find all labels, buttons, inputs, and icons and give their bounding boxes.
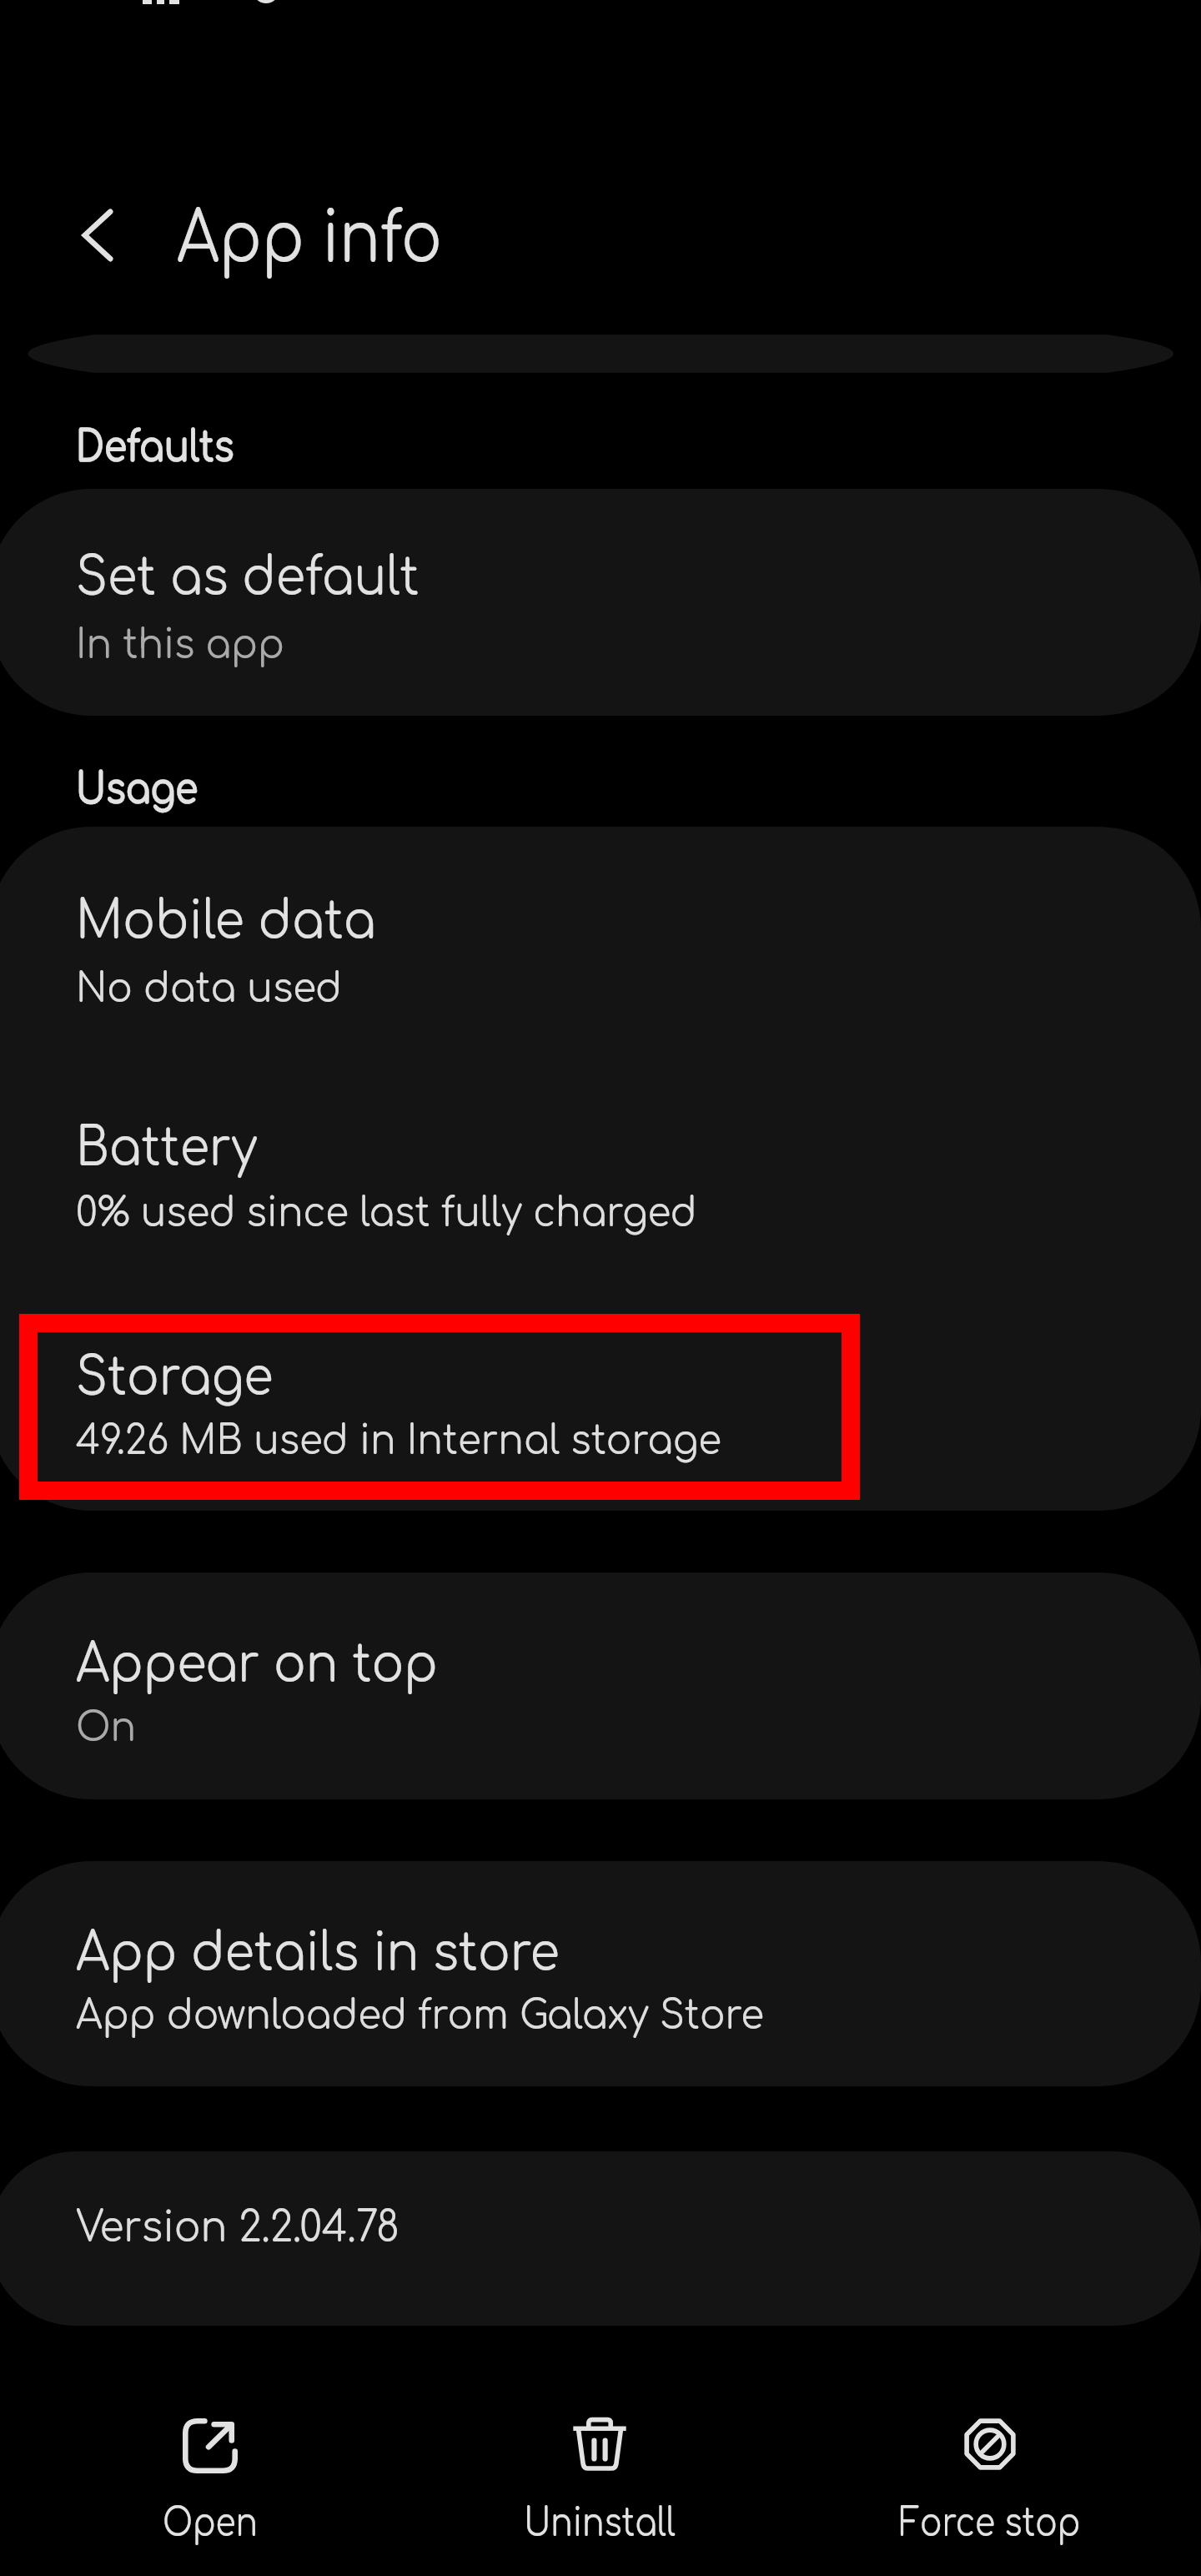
staticText: Defaults (76, 425, 234, 471)
button[interactable] (0, 1861, 1201, 2086)
staticText: On (76, 1706, 136, 1751)
staticText: Usage (76, 767, 198, 813)
staticText: Uninstall (444, 2502, 756, 2544)
staticText: Battery (76, 1119, 257, 1178)
button[interactable]: Force stop (807, 2382, 1173, 2565)
button[interactable]: Navigate up (60, 198, 137, 274)
button[interactable]: Uninstall (416, 2382, 783, 2565)
staticText: Force stop (834, 2502, 1146, 2544)
staticText: Version 2.2.04.78 (76, 2205, 400, 2251)
staticText: No data used (76, 967, 342, 1012)
button[interactable] (0, 1572, 1201, 1799)
staticText: 49.26 MB used in Internal storage (76, 1419, 722, 1464)
button[interactable] (0, 2151, 1201, 2326)
staticText: 0% used since last fully charged (76, 1191, 697, 1236)
staticText: App downloaded from Galaxy Store (76, 1994, 764, 2039)
staticText: App details in store (76, 1924, 560, 1983)
staticText: Storage (76, 1348, 274, 1407)
staticText: In this app (76, 623, 284, 668)
button[interactable] (0, 489, 1201, 716)
staticText: App info (177, 200, 442, 279)
staticText: Appear on top (76, 1635, 438, 1694)
staticText: Open (54, 2502, 366, 2544)
staticText: Mobile data (76, 892, 376, 951)
button[interactable] (0, 827, 1201, 1511)
button[interactable]: Open (27, 2382, 394, 2565)
staticText: Set as default (76, 548, 419, 607)
